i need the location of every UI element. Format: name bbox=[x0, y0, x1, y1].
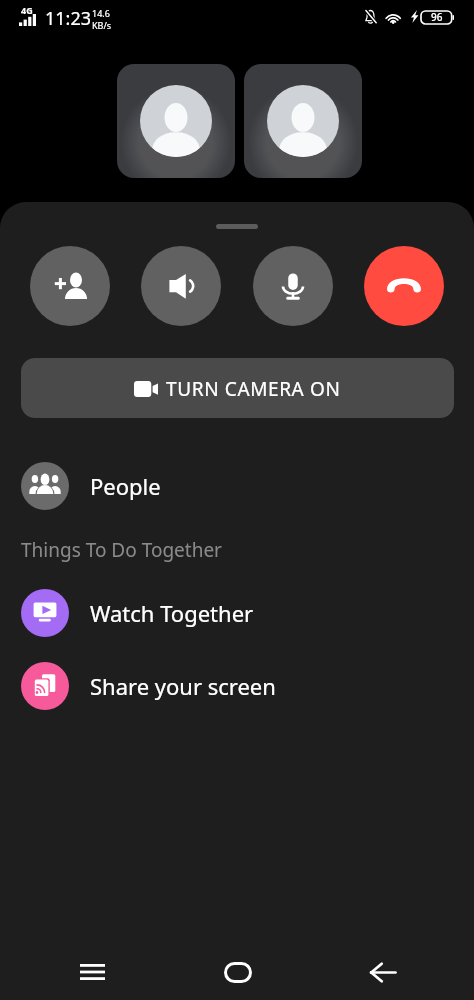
button[interactable]: Add people bbox=[30, 246, 110, 326]
staticText: Share your screen bbox=[90, 671, 276, 701]
staticText: 11:23 bbox=[45, 6, 92, 31]
staticText: People bbox=[90, 471, 161, 501]
staticText: KB/s bbox=[92, 19, 112, 31]
staticText: TURN CAMERA ON bbox=[166, 376, 341, 402]
button[interactable]: Watch Together bbox=[0, 589, 474, 637]
button[interactable]: Home bbox=[201, 942, 274, 1000]
staticText: Things To Do Together bbox=[21, 537, 222, 563]
button[interactable]: Share your screen bbox=[0, 662, 474, 710]
button[interactable]: Participant 1 video bbox=[117, 64, 235, 178]
staticText: 14.6 bbox=[92, 7, 110, 19]
staticText: 96 bbox=[431, 10, 443, 24]
button[interactable]: Speaker bbox=[141, 246, 221, 326]
button[interactable]: People bbox=[0, 462, 474, 510]
button[interactable]: Back bbox=[346, 942, 419, 1000]
staticText: Watch Together bbox=[90, 598, 254, 628]
staticText: 4G bbox=[21, 4, 33, 16]
button[interactable]: Participant 2 video bbox=[244, 64, 362, 178]
button[interactable]: Recent apps bbox=[56, 942, 128, 1000]
button[interactable]: Mute microphone bbox=[253, 246, 333, 326]
button[interactable]: End call bbox=[364, 246, 444, 326]
button[interactable]: TURN CAMERA ON bbox=[21, 358, 454, 418]
